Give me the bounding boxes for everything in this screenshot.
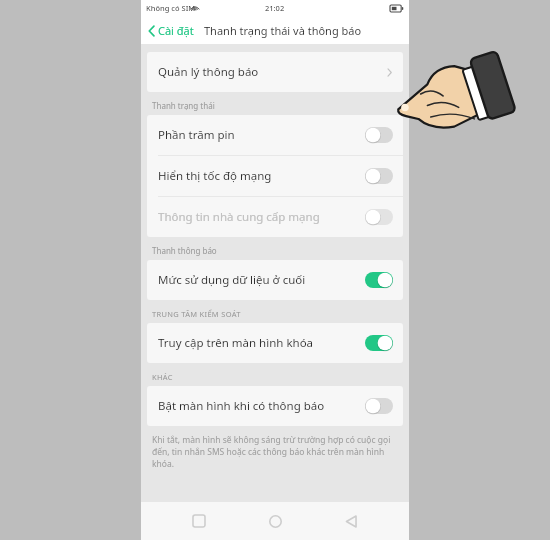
button[interactable]: Thông tin nhà cung cấp mạng: [147, 197, 403, 237]
staticText: 21:02: [265, 3, 285, 13]
staticText: Thanh trạng thái: [152, 100, 409, 111]
staticText: Không có SIM: [146, 3, 196, 13]
staticText: Thanh thông báo: [152, 245, 409, 256]
button[interactable]: Bật màn hình khi có thông báo: [147, 386, 403, 426]
button[interactable]: Back: [333, 503, 369, 539]
staticText: Phần trăm pin: [158, 127, 235, 143]
button[interactable]: Mức sử dụng dữ liệu ở cuối: [147, 260, 403, 300]
staticText: Truy cập trên màn hình khóa: [158, 335, 314, 351]
button[interactable]: Truy cập trên màn hình khóa: [147, 323, 403, 363]
staticText: Mức sử dụng dữ liệu ở cuối: [158, 272, 306, 288]
staticText: Thông tin nhà cung cấp mạng: [158, 209, 320, 225]
button[interactable]: Recent apps: [181, 503, 217, 539]
button[interactable]: Home: [257, 503, 293, 539]
staticText: TRUNG TÂM KIỂM SOÁT: [152, 309, 409, 319]
button[interactable]: Hiển thị tốc độ mạng: [147, 156, 403, 196]
button[interactable]: Cài đặt: [146, 19, 196, 42]
button[interactable]: Phần trăm pin: [147, 115, 403, 155]
button[interactable]: Quản lý thông báo: [147, 52, 403, 92]
staticText: Cài đặt: [158, 23, 194, 38]
staticText: KHÁC: [152, 372, 409, 382]
staticText: Bật màn hình khi có thông báo: [158, 398, 325, 414]
staticText: Quản lý thông báo: [158, 64, 259, 80]
staticText: Hiển thị tốc độ mạng: [158, 168, 272, 184]
staticText: Khi tắt, màn hình sẽ không sáng trừ trườ…: [152, 434, 397, 470]
staticText: Thanh trạng thái và thông báo: [204, 23, 362, 38]
